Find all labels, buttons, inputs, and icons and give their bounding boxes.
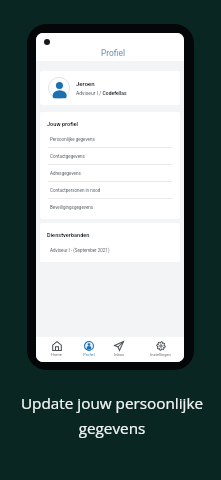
staticText: Contactpersonen in nood: [50, 188, 101, 193]
button[interactable]: Instellingen: [144, 337, 177, 362]
staticText: Inbox: [114, 352, 124, 357]
staticText: Beveiligingsgegevens: [50, 205, 94, 210]
staticText: Adresgegevens: [50, 171, 81, 176]
staticText: Jouw profiel: [47, 121, 79, 128]
staticText: Instellingen: [150, 352, 171, 357]
button[interactable]: Persoonlijke gegevens: [40, 131, 180, 147]
button[interactable]: Adresgegevens: [40, 165, 180, 181]
staticText: Contactgegevens: [50, 154, 85, 159]
staticText: Adviseur I / Codefellas: [76, 90, 127, 96]
button[interactable]: Jeroen: [40, 71, 180, 105]
button[interactable]: Beveiligingsgegevens: [40, 199, 180, 215]
button[interactable]: Contactpersonen in nood: [40, 182, 180, 198]
staticText: Dienstverbanden: [47, 232, 90, 239]
button[interactable]: Contactgegevens: [40, 148, 180, 164]
button[interactable]: Profiel: [72, 337, 105, 362]
staticText: Profiel: [83, 352, 95, 357]
staticText: Update jouw persoonlijke gegevens: [19, 393, 205, 439]
button[interactable]: Adviseur I - (September 2021): [40, 242, 180, 258]
button[interactable]: Home: [40, 337, 73, 362]
staticText: Jeroen: [76, 80, 95, 87]
staticText: Home: [51, 352, 62, 357]
staticText: Adviseur I - (September 2021): [50, 248, 110, 253]
staticText: Persoonlijke gegevens: [50, 137, 95, 142]
staticText: Profiel: [101, 48, 125, 58]
button[interactable]: Inbox: [102, 337, 135, 362]
